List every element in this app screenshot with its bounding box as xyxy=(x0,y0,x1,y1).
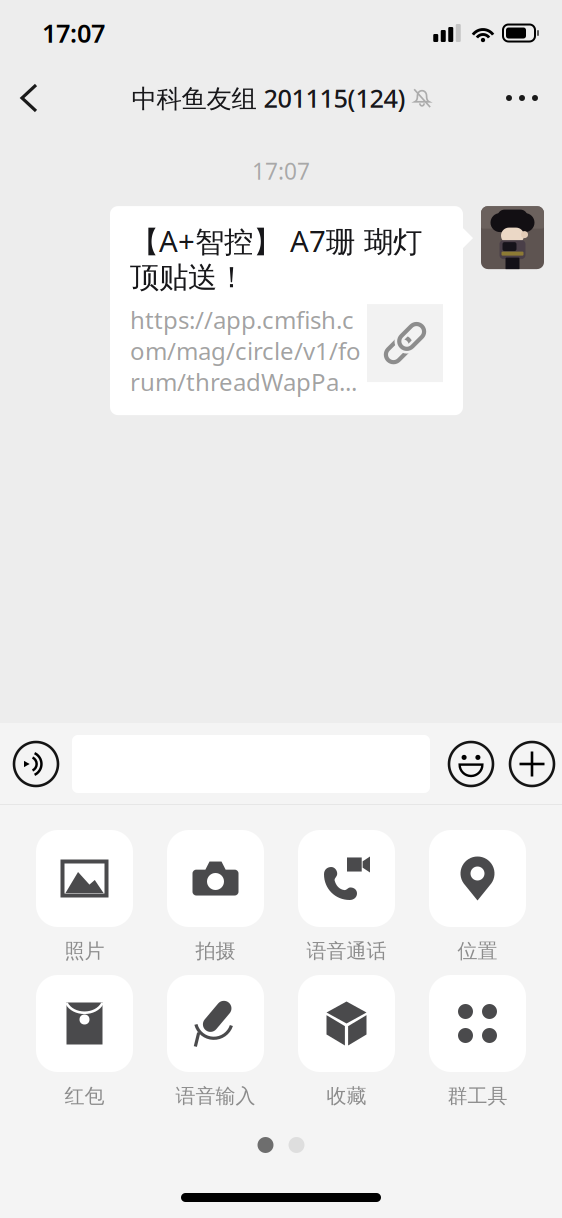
button[interactable]: Emoji xyxy=(440,723,502,805)
button[interactable]: 收藏 xyxy=(281,975,412,1120)
button[interactable]: 群工具 xyxy=(412,975,543,1120)
staticText: 群工具 xyxy=(447,1084,507,1108)
button[interactable]: 红包 xyxy=(19,975,150,1120)
staticText: 拍摄 xyxy=(195,939,235,963)
staticText: 收藏 xyxy=(326,1084,366,1108)
staticText: 顶贴送！ xyxy=(130,260,246,296)
staticText: 语音通话 xyxy=(306,939,386,963)
button[interactable]: 语音通话 xyxy=(281,830,412,975)
staticText: 语音输入 xyxy=(175,1084,255,1108)
button[interactable]: 语音输入 xyxy=(150,975,281,1120)
button[interactable]: 位置 xyxy=(412,830,543,975)
staticText: 17:07 xyxy=(42,16,105,50)
staticText: 中科鱼友组 201115(124) xyxy=(131,81,405,115)
staticText: 照片 xyxy=(64,939,104,963)
staticText: https://app.cmfish.c xyxy=(130,304,354,336)
button[interactable]: More xyxy=(482,66,562,130)
staticText: 红包 xyxy=(64,1084,104,1108)
staticText: 17:07 xyxy=(252,156,310,186)
button[interactable]: 拍摄 xyxy=(150,830,281,975)
button[interactable]: Back xyxy=(0,66,58,130)
button[interactable]: More options xyxy=(502,723,562,805)
staticText: rum/threadWapPa... xyxy=(130,366,357,398)
button[interactable]: 照片 xyxy=(19,830,150,975)
button[interactable]: Voice message xyxy=(0,723,72,805)
staticText: om/mag/circle/v1/fo xyxy=(130,335,361,367)
staticText: 【A+智控】 A7珊 瑚灯 xyxy=(130,221,422,260)
staticText: 位置 xyxy=(457,939,497,963)
